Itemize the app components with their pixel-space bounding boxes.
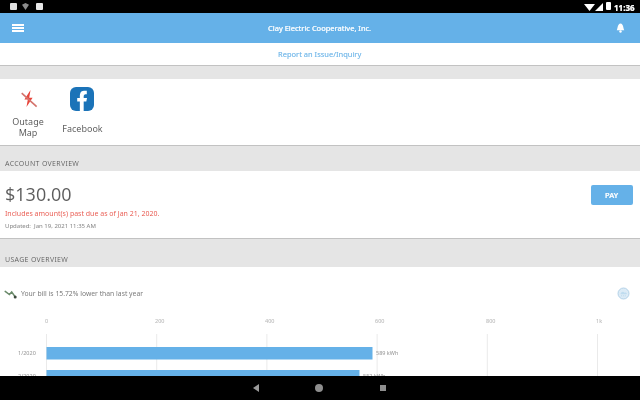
staticText: 2/2020 — [18, 372, 36, 379]
button[interactable]: Report an Issue/Inquiry — [0, 43, 640, 65]
staticText: 1k — [596, 317, 603, 324]
staticText: PAY — [605, 190, 619, 200]
button[interactable]: Outage Map — [4, 90, 52, 139]
staticText: ACCOUNT OVERVIEW — [5, 159, 80, 169]
staticText: 589 kWh — [376, 349, 399, 356]
button[interactable]: Open navigation menu — [6, 16, 30, 40]
staticText: 11:36 — [614, 2, 635, 13]
staticText: $130.00 — [5, 182, 72, 207]
button[interactable]: Back — [244, 376, 268, 400]
button[interactable]: Notifications — [611, 19, 629, 37]
staticText: 552 kWh — [363, 372, 386, 379]
staticText: Updated: Jan 19, 2021 11:35 AM — [5, 222, 96, 230]
staticText: Your bill is 15.72% lower than last year — [21, 289, 144, 298]
staticText: Clay Electric Cooperative, Inc. — [268, 23, 372, 33]
staticText: 800 — [486, 317, 496, 324]
button[interactable]: Recent apps — [371, 376, 395, 400]
button[interactable]: Weather info — [615, 285, 631, 301]
staticText: Report an Issue/Inquiry — [278, 49, 362, 59]
button[interactable]: PAY — [591, 185, 633, 205]
button[interactable]: Facebook — [58, 87, 106, 134]
staticText: Facebook — [62, 122, 103, 134]
staticText: 400 — [265, 317, 275, 324]
staticText: 200 — [155, 317, 165, 324]
staticText: Includes amount(s) past due as of Jan 21… — [5, 209, 160, 219]
staticText: USAGE OVERVIEW — [5, 255, 69, 265]
staticText: 600 — [375, 317, 385, 324]
staticText: Outage Map — [12, 115, 44, 139]
button[interactable]: Home — [307, 376, 331, 400]
staticText: 0 — [45, 317, 49, 324]
staticText: 1/2020 — [18, 349, 36, 356]
